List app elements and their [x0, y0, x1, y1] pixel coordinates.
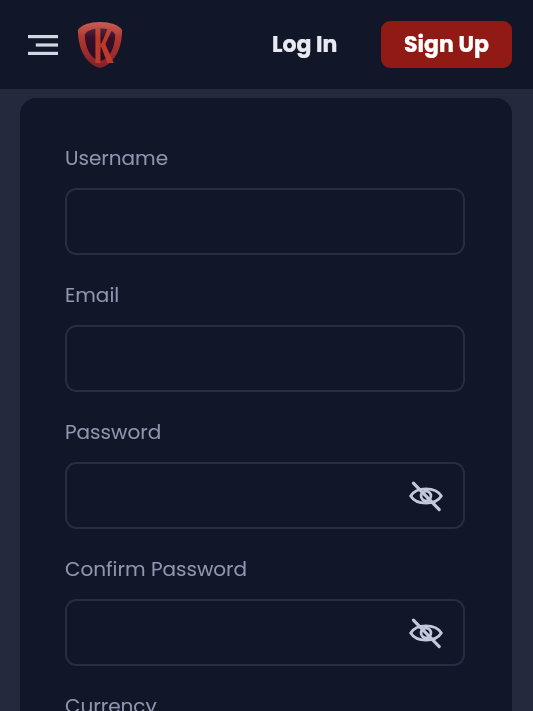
staticText: Password	[65, 418, 162, 446]
button[interactable]: Toggle password visibility	[65, 599, 465, 666]
button[interactable]: Home	[77, 20, 123, 69]
button[interactable]: Toggle password visibility	[65, 462, 465, 529]
button[interactable]: Toggle password visibility	[407, 614, 445, 652]
button[interactable]: Sign Up	[381, 21, 512, 68]
button[interactable]: Log In	[264, 19, 346, 70]
staticText: Confirm Password	[65, 555, 248, 583]
button[interactable]: Toggle password visibility	[407, 477, 445, 515]
staticText: Email	[65, 281, 120, 309]
button[interactable]: Open navigation menu	[24, 26, 61, 63]
staticText: Username	[65, 144, 169, 172]
staticText: Log In	[272, 29, 338, 60]
staticText: Sign Up	[404, 29, 489, 60]
staticText: Currency	[65, 692, 157, 711]
button[interactable]	[65, 188, 465, 255]
button[interactable]	[65, 325, 465, 392]
